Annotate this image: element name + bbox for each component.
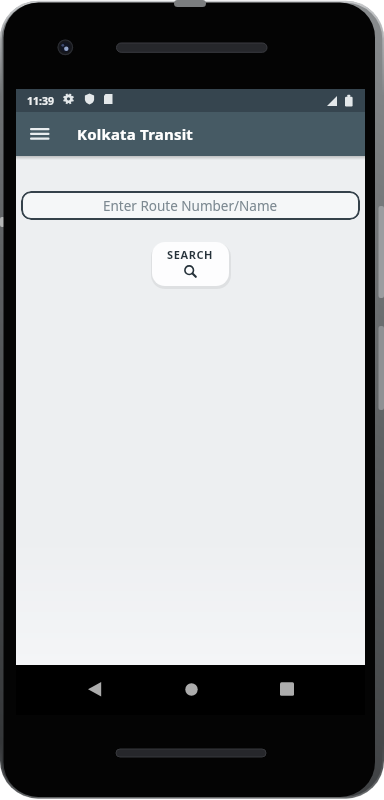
button[interactable] (133, 665, 249, 715)
button[interactable] (249, 665, 365, 715)
button[interactable]: Enter Route Number/Name (21, 191, 360, 220)
button[interactable] (16, 665, 133, 715)
staticText: Kolkata Transit (77, 124, 194, 144)
staticText: SEARCH (167, 247, 214, 262)
button[interactable]: SEARCH (152, 242, 229, 286)
staticText: Enter Route Number/Name (103, 197, 278, 215)
button[interactable] (22, 116, 58, 152)
staticText: 11:39 (27, 94, 54, 108)
